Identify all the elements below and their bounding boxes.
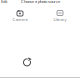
staticText: Library <box>53 17 66 22</box>
button[interactable]: Edit <box>0 0 7 3</box>
staticText: Choose a photo source <box>21 0 60 4</box>
button[interactable]: Library <box>40 10 80 21</box>
staticText: Edit <box>1 0 7 4</box>
button[interactable]: Camera <box>0 10 40 21</box>
staticText: Camera <box>12 17 27 22</box>
